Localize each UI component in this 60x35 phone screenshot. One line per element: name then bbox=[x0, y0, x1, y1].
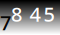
staticText: 5 bbox=[43, 1, 54, 27]
staticText: 4 bbox=[29, 1, 40, 27]
staticText: 8 bbox=[11, 1, 22, 27]
staticText: 7 bbox=[0, 9, 11, 35]
